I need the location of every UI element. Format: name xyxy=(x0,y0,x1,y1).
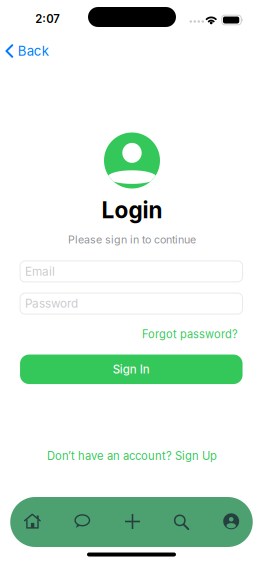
staticText: Login xyxy=(101,196,162,224)
staticText: Forgot password? xyxy=(142,328,238,341)
staticText: Password xyxy=(25,296,78,311)
button[interactable]: Forgot password? xyxy=(142,328,238,341)
staticText: 2:07 xyxy=(35,12,60,26)
button[interactable]: Email xyxy=(20,261,243,282)
button[interactable]: Sign In xyxy=(20,355,243,384)
button[interactable]: Search xyxy=(159,499,203,543)
staticText: Email xyxy=(25,264,55,278)
button[interactable]: Profile xyxy=(209,499,253,543)
button[interactable]: Home xyxy=(10,499,54,543)
button[interactable]: Back xyxy=(5,41,49,61)
button[interactable]: Don’t have an account? Sign Up xyxy=(47,449,217,463)
staticText: Back xyxy=(18,43,49,59)
staticText: Sign In xyxy=(113,362,150,376)
staticText: Please sign in to continue xyxy=(68,233,196,246)
staticText: Don’t have an account? Sign Up xyxy=(47,449,217,463)
button[interactable]: Password xyxy=(20,293,243,314)
button[interactable]: Messages xyxy=(60,499,104,543)
button[interactable]: Add xyxy=(110,499,154,543)
